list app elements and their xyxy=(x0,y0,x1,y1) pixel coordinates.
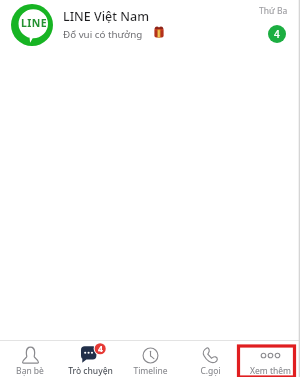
staticText: LINE Việt Nam xyxy=(63,8,149,25)
button[interactable]: LINE xyxy=(0,0,300,52)
button[interactable]: More xyxy=(240,341,300,377)
staticText: Đổ vui có thưởng xyxy=(63,28,143,41)
other: Timeline xyxy=(142,347,159,364)
staticText: 4 xyxy=(98,343,103,353)
staticText: Bạn bè xyxy=(16,365,44,377)
staticText: Xem thêm xyxy=(250,365,291,377)
button[interactable]: Calls xyxy=(180,341,240,377)
staticText: LINE xyxy=(21,16,47,30)
button[interactable]: 4 xyxy=(60,341,120,377)
button[interactable]: Timeline xyxy=(120,341,180,377)
staticText: Trò chuyện xyxy=(68,365,113,377)
staticText: C.gọi xyxy=(200,365,221,377)
staticText: 4 xyxy=(274,27,280,41)
staticText: Timeline xyxy=(133,365,168,377)
other: More xyxy=(262,347,279,364)
other: Friends xyxy=(22,347,39,364)
staticText: Thứ Ba xyxy=(259,5,288,17)
other: Calls xyxy=(202,347,219,364)
button[interactable]: Friends xyxy=(0,341,60,377)
